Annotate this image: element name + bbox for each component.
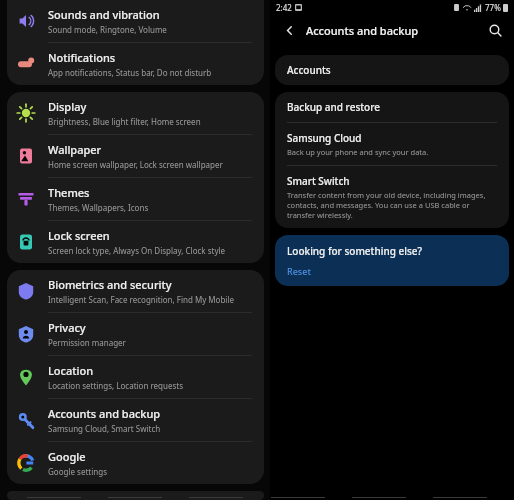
staticText: Accounts and backup: [306, 23, 419, 38]
button[interactable]: Location: [7, 356, 264, 399]
button[interactable]: Sounds and vibration: [7, 0, 264, 43]
staticText: Home screen wallpaper, Lock screen wallp…: [48, 159, 223, 170]
staticText: Biometrics and security: [48, 277, 172, 292]
staticText: Brightness, Blue light filter, Home scre…: [48, 116, 201, 127]
staticText: Intelligent Scan, Face recognition, Find…: [48, 294, 235, 305]
button[interactable]: Google: [7, 442, 264, 484]
button[interactable]: Back: [278, 19, 300, 41]
button[interactable]: Accounts: [275, 55, 509, 85]
staticText: Location: [48, 363, 94, 378]
staticText: 2:42: [276, 2, 292, 13]
button[interactable]: Backup and restore: [275, 92, 509, 123]
staticText: Looking for something else?: [287, 244, 422, 258]
staticText: Transfer content from your old device, i…: [287, 190, 497, 220]
staticText: Samsung Cloud, Smart Switch: [48, 423, 161, 434]
staticText: Google settings: [48, 466, 107, 477]
staticText: Themes: [48, 185, 90, 200]
staticText: Screen lock type, Always On Display, Clo…: [48, 245, 226, 256]
staticText: Lock screen: [48, 228, 110, 243]
button[interactable]: Themes: [7, 178, 264, 221]
button[interactable]: Smart Switch: [275, 166, 509, 228]
staticText: Permission manager: [48, 337, 126, 348]
button[interactable]: Privacy: [7, 313, 264, 356]
staticText: Themes, Wallpapers, Icons: [48, 202, 149, 213]
button[interactable]: Lock screen: [7, 221, 264, 263]
staticText: Wallpaper: [48, 142, 102, 157]
staticText: Back up your phone and sync your data.: [287, 147, 429, 157]
button[interactable]: Search: [484, 19, 506, 41]
button[interactable]: Biometrics and security: [7, 270, 264, 313]
staticText: Privacy: [48, 320, 86, 335]
staticText: Sound mode, Ringtone, Volume: [48, 24, 167, 35]
button[interactable]: Accounts and backup: [7, 399, 264, 442]
staticText: Samsung Cloud: [287, 131, 362, 145]
staticText: Reset: [287, 265, 311, 277]
button[interactable]: Notifications: [7, 43, 264, 85]
staticText: Accounts and backup: [48, 406, 161, 421]
staticText: Display: [48, 99, 87, 114]
button[interactable]: Wallpaper: [7, 135, 264, 178]
staticText: Accounts: [287, 63, 331, 77]
staticText: 77%: [485, 2, 501, 13]
staticText: Location settings, Location requests: [48, 380, 184, 391]
staticText: Smart Switch: [287, 174, 350, 188]
staticText: Sounds and vibration: [48, 7, 160, 22]
button[interactable]: Samsung Cloud: [275, 123, 509, 166]
button[interactable]: Reset: [287, 265, 311, 277]
staticText: Backup and restore: [287, 100, 380, 114]
staticText: Google: [48, 449, 86, 464]
staticText: App notifications, Status bar, Do not di…: [48, 67, 212, 78]
button[interactable]: Advanced features: [7, 491, 264, 500]
staticText: Notifications: [48, 50, 116, 65]
button[interactable]: Display: [7, 92, 264, 135]
